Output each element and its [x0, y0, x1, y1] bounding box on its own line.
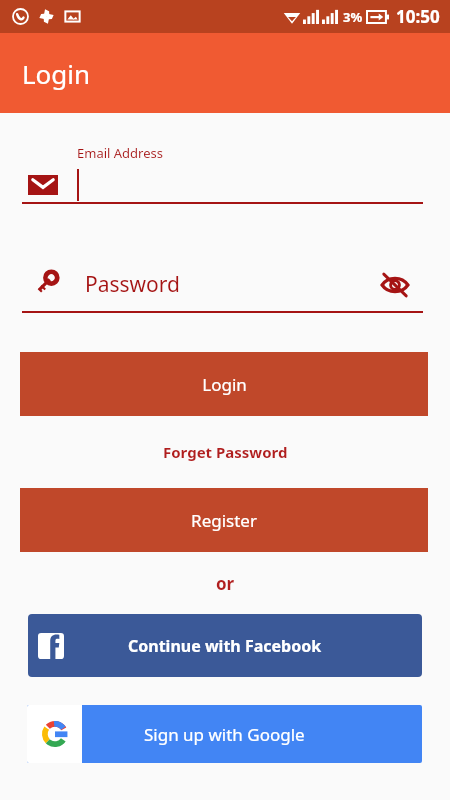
staticText: or [216, 572, 235, 595]
button[interactable]: Forget Password [0, 434, 450, 470]
button[interactable]: Login [20, 352, 428, 416]
button[interactable]: Register [20, 488, 428, 552]
staticText: Email Address [77, 144, 163, 162]
button[interactable]: Password [0, 259, 450, 314]
staticText: Password [85, 270, 180, 299]
button[interactable]: Show password [378, 268, 412, 302]
staticText: Forget Password [163, 442, 288, 462]
staticText: Sign up with Google [144, 723, 305, 746]
button[interactable]: Sign up with Google [27, 705, 422, 763]
staticText: Login [22, 56, 91, 91]
staticText: Login [202, 373, 247, 396]
staticText: Register [191, 509, 257, 532]
staticText: 3% [343, 8, 363, 26]
staticText: 10:50 [396, 5, 440, 28]
button[interactable]: Email Address [0, 144, 450, 226]
button[interactable]: Continue with Facebook [28, 614, 422, 677]
staticText: Continue with Facebook [128, 635, 322, 657]
